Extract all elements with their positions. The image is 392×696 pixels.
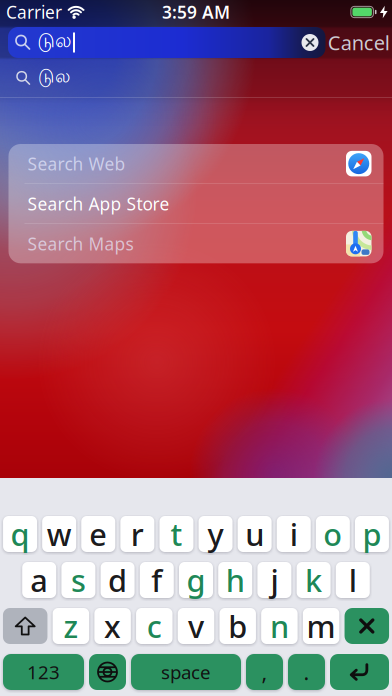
- button[interactable]: r: [120, 516, 154, 552]
- button[interactable]: n: [261, 608, 298, 644]
- staticText: e: [89, 514, 107, 554]
- staticText: v: [188, 606, 204, 646]
- staticText: space: [161, 660, 211, 684]
- staticText: d: [108, 560, 127, 600]
- staticText: n: [270, 606, 289, 646]
- staticText: Search App Store: [27, 192, 169, 215]
- staticText: l: [349, 560, 357, 600]
- staticText: b: [228, 606, 247, 646]
- button[interactable]: e: [81, 516, 115, 552]
- button[interactable]: c: [136, 608, 173, 644]
- staticText: q: [11, 514, 30, 554]
- button[interactable]: 123: [3, 654, 84, 690]
- button[interactable]: y: [199, 516, 233, 552]
- staticText: o: [323, 514, 342, 554]
- staticText: c: [147, 606, 162, 646]
- staticText: f: [151, 560, 162, 600]
- button[interactable]: t: [159, 516, 193, 552]
- staticText: a: [30, 560, 48, 600]
- staticText: s: [71, 560, 86, 600]
- staticText: ,: [261, 658, 267, 686]
- button[interactable]: v: [178, 608, 214, 644]
- button[interactable]: Cancel: [325, 27, 392, 58]
- button[interactable]: Return: [330, 654, 389, 690]
- button[interactable]: b: [219, 608, 256, 644]
- staticText: t: [170, 514, 182, 554]
- staticText: w: [47, 514, 72, 554]
- button[interactable]: Search App Store: [8, 184, 383, 223]
- button[interactable]: u: [238, 516, 272, 552]
- button[interactable]: o: [316, 516, 350, 552]
- button[interactable]: d: [101, 562, 135, 598]
- button[interactable]: m: [303, 608, 339, 644]
- button[interactable]: ,: [246, 654, 283, 690]
- staticText: டுல: [38, 67, 70, 89]
- staticText: k: [305, 560, 322, 600]
- button[interactable]: i: [277, 516, 311, 552]
- staticText: r: [131, 514, 144, 554]
- staticText: .: [303, 658, 309, 686]
- button[interactable]: z: [53, 608, 89, 644]
- staticText: Carrier: [6, 0, 62, 23]
- button[interactable]: a: [22, 562, 56, 598]
- button[interactable]: s: [61, 562, 95, 598]
- staticText: Search Maps: [27, 232, 133, 255]
- button[interactable]: w: [42, 516, 76, 552]
- staticText: 123: [27, 660, 60, 684]
- staticText: 3:59 AM: [162, 0, 230, 23]
- button[interactable]: h: [218, 562, 252, 598]
- staticText: h: [226, 560, 245, 600]
- button[interactable]: f: [140, 562, 174, 598]
- button[interactable]: p: [355, 516, 389, 552]
- button[interactable]: x: [94, 608, 131, 644]
- staticText: x: [104, 606, 121, 646]
- button[interactable]: Next keyboard: [89, 654, 126, 690]
- staticText: Cancel: [328, 29, 390, 56]
- button[interactable]: Search Maps: [8, 224, 383, 263]
- button[interactable]: q: [3, 516, 37, 552]
- staticText: j: [270, 560, 278, 600]
- staticText: g: [186, 560, 205, 600]
- staticText: y: [208, 514, 224, 554]
- staticText: Search Web: [27, 152, 125, 175]
- button[interactable]: Search Web: [8, 144, 383, 183]
- button[interactable]: Delete: [344, 608, 389, 644]
- button[interactable]: டுல: [0, 59, 392, 98]
- button[interactable]: l: [336, 562, 370, 598]
- staticText: p: [362, 514, 381, 554]
- button[interactable]: space: [131, 654, 241, 690]
- staticText: m: [307, 606, 336, 646]
- button[interactable]: .: [288, 654, 325, 690]
- staticText: i: [290, 514, 298, 554]
- staticText: u: [245, 514, 264, 554]
- button[interactable]: j: [257, 562, 291, 598]
- button[interactable]: k: [297, 562, 331, 598]
- staticText: z: [63, 606, 78, 646]
- button[interactable]: g: [179, 562, 213, 598]
- button[interactable]: Clear search text: [301, 34, 325, 51]
- staticText: டுல: [37, 31, 72, 54]
- button[interactable]: Shift: [3, 608, 47, 644]
